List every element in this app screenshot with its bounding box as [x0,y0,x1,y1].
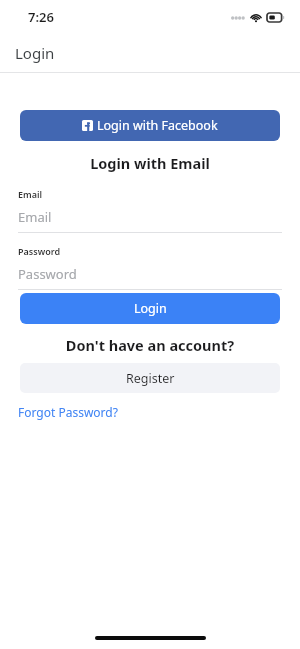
button[interactable]: Register [20,363,280,393]
staticText: Password [18,265,77,283]
staticText: Register [126,370,175,387]
button[interactable]: Login with Facebook [20,110,280,141]
button[interactable]: Password [18,245,282,290]
button[interactable]: Forgot Password? [18,404,118,420]
staticText: Login [134,300,167,317]
staticText: Email [18,188,43,200]
button[interactable]: Login [20,293,280,324]
button[interactable]: Email [18,188,282,233]
staticText: Password [18,245,61,257]
staticText: Forgot Password? [18,404,118,420]
staticText: Don't have an account? [0,335,300,355]
staticText: 7:26 [28,8,54,26]
staticText: Login with Facebook [97,117,218,134]
staticText: Login [15,43,55,63]
staticText: Email [18,208,52,226]
staticText: Login with Email [0,153,300,173]
